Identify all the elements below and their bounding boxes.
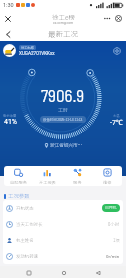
button[interactable]: 发动机转速: [3, 248, 123, 264]
button[interactable]: Back: [92, 267, 103, 278]
button[interactable]: 机主姓名: [3, 232, 123, 248]
staticText: 41%: [4, 118, 17, 126]
button[interactable]: Recent apps: [23, 267, 34, 278]
button[interactable]: 服务: [62, 166, 92, 186]
button[interactable]: Close page: [113, 13, 124, 24]
staticText: 剩余油量: [3, 113, 17, 118]
button[interactable]: 自助服务: [4, 166, 33, 186]
staticText: 机主姓名: [16, 237, 34, 243]
button[interactable]: More options: [102, 13, 113, 24]
staticText: 发动机转速: [16, 253, 38, 259]
button[interactable]: 开工报表: [33, 166, 62, 186]
staticText: 1:30: [3, 2, 14, 8]
staticText: 徐工e榜: [52, 12, 75, 21]
staticText: 维修: [103, 179, 112, 185]
button[interactable]: 开机状态: [3, 200, 123, 216]
button[interactable]: 维修: [92, 166, 122, 186]
staticText: 自助服务: [10, 179, 27, 185]
staticText: xx.xcmg.com: [53, 21, 74, 25]
staticText: 开机状态: [16, 205, 34, 211]
staticText: 0r/min: [106, 254, 120, 259]
staticText: 1项: [113, 237, 120, 243]
staticText: 设备时间 2025-11-13 11:13: [43, 117, 83, 122]
staticText: 当天工作时长: [16, 221, 43, 227]
staticText: 0小时: [108, 221, 120, 227]
staticText: 7906.9: [41, 85, 85, 105]
button[interactable]: Home: [58, 267, 69, 278]
staticText: XUGA2701VKKxx: [19, 51, 55, 56]
staticText: 徐工机械: [21, 45, 34, 50]
staticText: -7℃: [110, 118, 123, 128]
staticText: 已开机: [105, 205, 117, 211]
button[interactable]: Settings: [112, 46, 122, 56]
button[interactable]: Close: [2, 13, 13, 24]
staticText: 开工报表: [39, 179, 56, 185]
staticText: 最新工况: [48, 28, 78, 39]
button[interactable]: 当天工作时长: [3, 216, 123, 232]
staticText: 工时: [58, 106, 69, 113]
staticText: 浙江省绍兴市…: [50, 142, 83, 149]
staticText: 水温: [113, 113, 120, 118]
staticText: 服务: [73, 179, 82, 185]
button[interactable]: Back: [2, 28, 14, 40]
staticText: 工况参数: [8, 192, 30, 200]
